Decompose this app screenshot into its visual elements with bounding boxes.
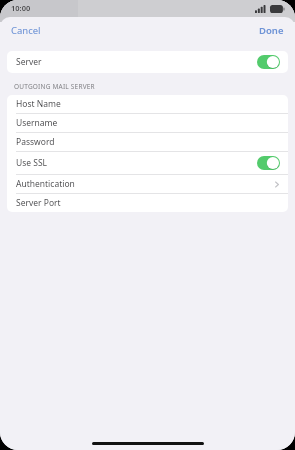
- button[interactable]: Server Port: [7, 194, 288, 212]
- staticText: Authentication: [16, 178, 75, 190]
- staticText: Host Name: [16, 98, 61, 110]
- button[interactable]: Use SSL: [7, 152, 288, 174]
- staticText: Done: [259, 24, 284, 37]
- staticText: 10:00: [11, 3, 31, 13]
- button[interactable]: Server toggle: [257, 55, 280, 69]
- staticText: Use SSL: [16, 157, 48, 169]
- button[interactable]: Cancel: [0, 19, 52, 42]
- button[interactable]: Use SSL toggle: [257, 156, 280, 170]
- button[interactable]: Password: [7, 133, 288, 151]
- other: Open Authentication: [275, 181, 279, 188]
- staticText: Username: [16, 117, 58, 129]
- staticText: Password: [16, 136, 55, 148]
- button[interactable]: Done: [248, 19, 295, 42]
- staticText: OUTGOING MAIL SERVER: [14, 82, 295, 91]
- button[interactable]: Authentication: [7, 175, 288, 193]
- staticText: Server Port: [16, 197, 61, 209]
- button[interactable]: Host Name: [7, 95, 288, 113]
- button[interactable]: Username: [7, 114, 288, 132]
- staticText: Cancel: [11, 24, 41, 37]
- button[interactable]: Server: [7, 51, 288, 73]
- staticText: Server: [16, 56, 42, 68]
